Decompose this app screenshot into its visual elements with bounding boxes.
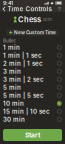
button[interactable]: 3 min | 2 sec: [0, 75, 65, 83]
button[interactable]: 15 min | 10 sec: [0, 107, 65, 115]
staticText: 10 min: [3, 100, 24, 107]
staticText: 3 min | 2 sec: [3, 76, 44, 83]
staticText: 1 min | 1 sec: [3, 52, 42, 59]
staticText: 5 min: [3, 84, 21, 91]
button[interactable]: Help: [56, 6, 65, 12]
staticText: 2 min | 1 sec: [3, 60, 43, 67]
button[interactable]: 10 min: [0, 99, 65, 107]
staticText: ?: [58, 6, 61, 12]
button[interactable]: 2 min | 1 sec: [0, 59, 65, 67]
staticText: .com: [42, 17, 52, 22]
staticText: 30 min: [3, 116, 25, 123]
staticText: 5 min | 5 sec: [3, 92, 44, 99]
staticText: Chess: [18, 15, 41, 24]
button[interactable]: 5 min: [0, 83, 65, 91]
staticText: New Custom Time: [14, 30, 56, 35]
staticText: 3 min: [3, 68, 21, 75]
button[interactable]: 30 min: [0, 115, 65, 123]
button[interactable]: Back: [0, 6, 7, 12]
button[interactable]: 1 min: [0, 43, 65, 51]
staticText: Time Controls: [7, 5, 51, 13]
staticText: 9:41: [3, 0, 13, 6]
staticText: 15 min | 10 sec: [3, 108, 50, 115]
button[interactable]: 1 min | 1 sec: [0, 51, 65, 59]
button[interactable]: 5 min | 5 sec: [0, 91, 65, 99]
staticText: 1 min: [3, 44, 20, 51]
staticText: Start: [25, 131, 40, 139]
button[interactable]: New Custom Time: [6, 29, 59, 35]
button[interactable]: Start: [3, 129, 62, 141]
button[interactable]: 3 min: [0, 67, 65, 75]
staticText: Bullet: [3, 38, 16, 43]
